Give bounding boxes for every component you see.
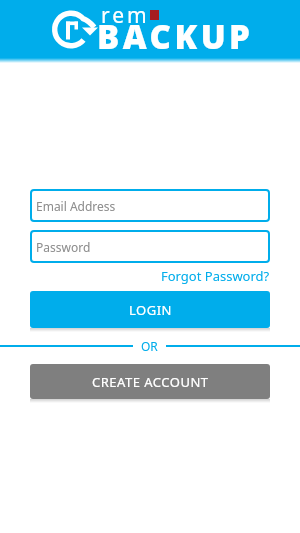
staticText: CREATE ACCOUNT — [92, 373, 209, 391]
staticText: LOGIN — [129, 301, 172, 319]
staticText: Password — [36, 239, 91, 255]
staticText: BACKUP — [97, 14, 254, 59]
staticText: Email Address — [36, 198, 116, 214]
button[interactable]: LOGIN — [30, 291, 270, 328]
button[interactable]: CREATE ACCOUNT — [30, 364, 270, 399]
staticText: OR — [141, 338, 158, 353]
staticText: rem — [101, 1, 150, 30]
button[interactable]: Email Address — [30, 189, 270, 222]
button[interactable]: Password — [30, 230, 270, 263]
button[interactable]: Forgot Password? — [161, 267, 270, 285]
